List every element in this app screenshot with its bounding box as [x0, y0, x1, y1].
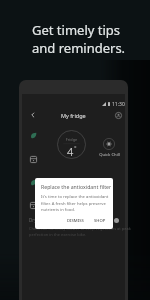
staticText: Replace the antioxidant filter [41, 183, 112, 190]
button[interactable]: Account [112, 109, 124, 121]
staticText: 4 [67, 144, 74, 159]
button[interactable]: Back [27, 109, 39, 121]
staticText: SHOP [94, 218, 106, 224]
staticText: It's time to replace the antioxidant fil… [41, 194, 109, 212]
button[interactable]: Fridge temperature [57, 130, 86, 159]
staticText: Get timely tips [32, 21, 121, 39]
staticText: Dry stored [29, 217, 52, 223]
staticText: Quick Chill [99, 152, 120, 158]
button[interactable]: Fridge [28, 154, 38, 164]
staticText: perfection in the exercise bike. [29, 232, 87, 237]
staticText: My fridge [61, 112, 86, 119]
staticText: DISMISS [67, 218, 84, 224]
button[interactable]: Storage [28, 200, 38, 210]
button[interactable]: DISMISS [66, 218, 85, 224]
button[interactable]: Freshness [28, 177, 38, 187]
button[interactable]: Quick Chill [97, 138, 121, 158]
button[interactable]: Eco tips [28, 130, 38, 140]
staticText: and reminders. [32, 39, 126, 57]
staticText: ° [74, 144, 77, 152]
staticText: Check the humidity drawer to keep vegeta… [29, 226, 131, 231]
staticText: 11:30 [112, 101, 125, 107]
button[interactable]: SHOP [93, 218, 107, 224]
staticText: Fridge [57, 137, 86, 142]
